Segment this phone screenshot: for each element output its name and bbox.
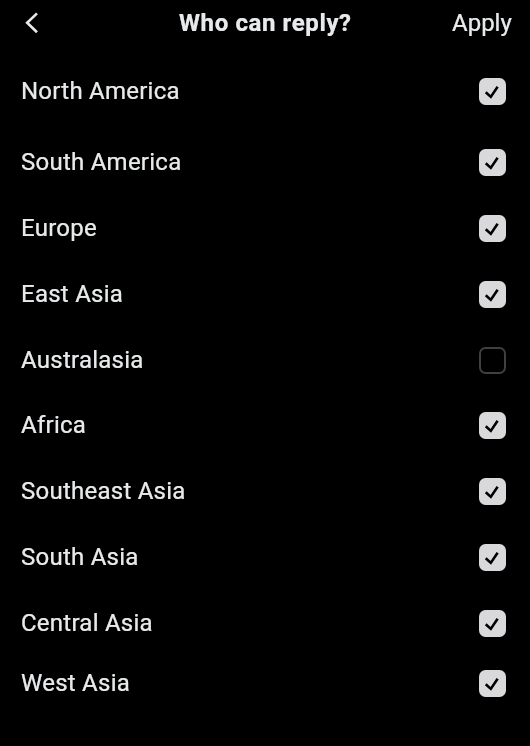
staticText: West Asia bbox=[21, 669, 479, 697]
staticText: Australasia bbox=[21, 346, 479, 374]
button[interactable]: West Asia bbox=[0, 650, 530, 716]
button[interactable]: South Asia bbox=[0, 524, 530, 590]
staticText: Apply bbox=[452, 9, 512, 37]
button[interactable]: Back bbox=[0, 0, 64, 45]
button[interactable]: Africa bbox=[0, 392, 530, 458]
staticText: South America bbox=[21, 148, 479, 176]
button[interactable]: Apply bbox=[433, 1, 530, 45]
button[interactable]: North America bbox=[0, 58, 530, 124]
staticText: Africa bbox=[21, 411, 479, 439]
staticText: Southeast Asia bbox=[21, 477, 479, 505]
staticText: East Asia bbox=[21, 280, 479, 308]
button[interactable]: Australasia bbox=[0, 327, 530, 393]
button[interactable]: East Asia bbox=[0, 261, 530, 327]
staticText: South Asia bbox=[21, 543, 479, 571]
staticText: North America bbox=[21, 77, 479, 105]
button[interactable]: South America bbox=[0, 129, 530, 195]
staticText: Europe bbox=[21, 214, 479, 242]
button[interactable]: Europe bbox=[0, 195, 530, 261]
staticText: Central Asia bbox=[21, 609, 479, 637]
button[interactable]: Central Asia bbox=[0, 590, 530, 656]
button[interactable]: Southeast Asia bbox=[0, 458, 530, 524]
staticText: Who can reply? bbox=[179, 9, 352, 37]
